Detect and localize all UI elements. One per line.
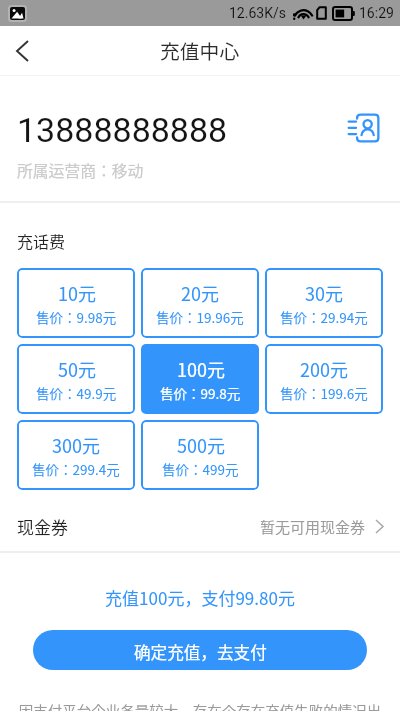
staticText: 售价：499元 xyxy=(162,459,239,479)
staticText: 100元 xyxy=(177,356,225,382)
button[interactable]: 200元 xyxy=(265,344,383,414)
staticText: 300元 xyxy=(52,432,100,458)
staticText: 50元 xyxy=(58,356,96,382)
staticText: 充值中心 xyxy=(160,36,240,65)
button[interactable]: 现金券 xyxy=(0,502,400,551)
staticText: 10元 xyxy=(58,280,96,306)
button[interactable]: 10元 xyxy=(17,268,135,338)
button[interactable]: 100元 xyxy=(141,344,259,414)
button[interactable]: 确定充值，去支付 xyxy=(33,630,367,670)
staticText: 因支付平台企业务量较大，存在个存在充值失败的情况出 xyxy=(0,700,400,711)
button[interactable]: 300元 xyxy=(17,420,135,490)
staticText: 20元 xyxy=(181,280,219,306)
button[interactable]: 选择联系人 xyxy=(346,110,382,146)
staticText: 500元 xyxy=(177,432,225,458)
staticText: 售价：199.6元 xyxy=(280,383,368,403)
staticText: 售价：9.98元 xyxy=(36,307,117,327)
staticText: 16:29 xyxy=(359,5,394,21)
staticText: 售价：19.96元 xyxy=(156,307,244,327)
staticText: 售价：29.94元 xyxy=(280,307,368,327)
staticText: 确定充值，去支付 xyxy=(134,640,267,664)
staticText: 现金券 xyxy=(17,514,68,539)
button[interactable]: 30元 xyxy=(265,268,383,338)
staticText: 13888888888 xyxy=(17,110,228,150)
button[interactable]: 500元 xyxy=(141,420,259,490)
staticText: 暂无可用现金券 xyxy=(260,516,366,538)
staticText: 售价：299.4元 xyxy=(32,459,120,479)
button[interactable]: 20元 xyxy=(141,268,259,338)
staticText: 充值100元，支付99.80元 xyxy=(0,585,400,610)
staticText: 200元 xyxy=(300,356,348,382)
staticText: 12.63K/s xyxy=(229,5,286,21)
button[interactable]: 返回 xyxy=(0,29,44,73)
button[interactable]: 50元 xyxy=(17,344,135,414)
staticText: 售价：49.9元 xyxy=(36,383,117,403)
staticText: 所属运营商：移动 xyxy=(17,159,144,182)
staticText: 售价：99.8元 xyxy=(160,383,241,403)
staticText: 30元 xyxy=(305,280,343,306)
staticText: 充话费 xyxy=(17,229,66,252)
